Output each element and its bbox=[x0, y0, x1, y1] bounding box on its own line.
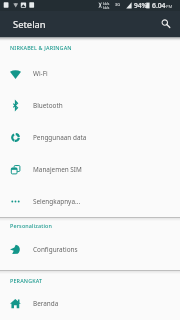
staticText: Setelan bbox=[13, 18, 46, 31]
staticText: kb/s kb/s bbox=[103, 2, 110, 10]
button[interactable]: Configurations bbox=[0, 233, 180, 265]
button[interactable]: Wi-Fi bbox=[0, 57, 180, 89]
staticText: PM bbox=[166, 4, 173, 10]
staticText: Beranda bbox=[33, 299, 59, 308]
staticText: Personalization bbox=[10, 222, 53, 229]
button[interactable]: Bluetooth bbox=[0, 89, 180, 121]
staticText: Penggunaan data bbox=[33, 133, 87, 142]
staticText: Selengkapnya... bbox=[33, 197, 81, 206]
staticText: Manajemen SIM bbox=[33, 165, 82, 174]
staticText: PERANGKAT bbox=[10, 277, 43, 284]
button[interactable]: Beranda bbox=[0, 287, 180, 319]
button[interactable]: Manajemen SIM bbox=[0, 153, 180, 185]
button[interactable]: Search bbox=[156, 14, 176, 34]
staticText: 94% bbox=[134, 1, 148, 10]
button[interactable]: Penggunaan data bbox=[0, 121, 180, 153]
staticText: Configurations bbox=[33, 245, 78, 254]
staticText: NIRKABEL & JARINGAN bbox=[10, 44, 72, 51]
staticText: Bluetooth bbox=[33, 101, 63, 110]
staticText: 6.04 bbox=[152, 1, 166, 10]
staticText: 3G bbox=[115, 2, 121, 7]
button[interactable]: Selengkapnya... bbox=[0, 185, 180, 217]
staticText: Wi-Fi bbox=[33, 69, 48, 78]
